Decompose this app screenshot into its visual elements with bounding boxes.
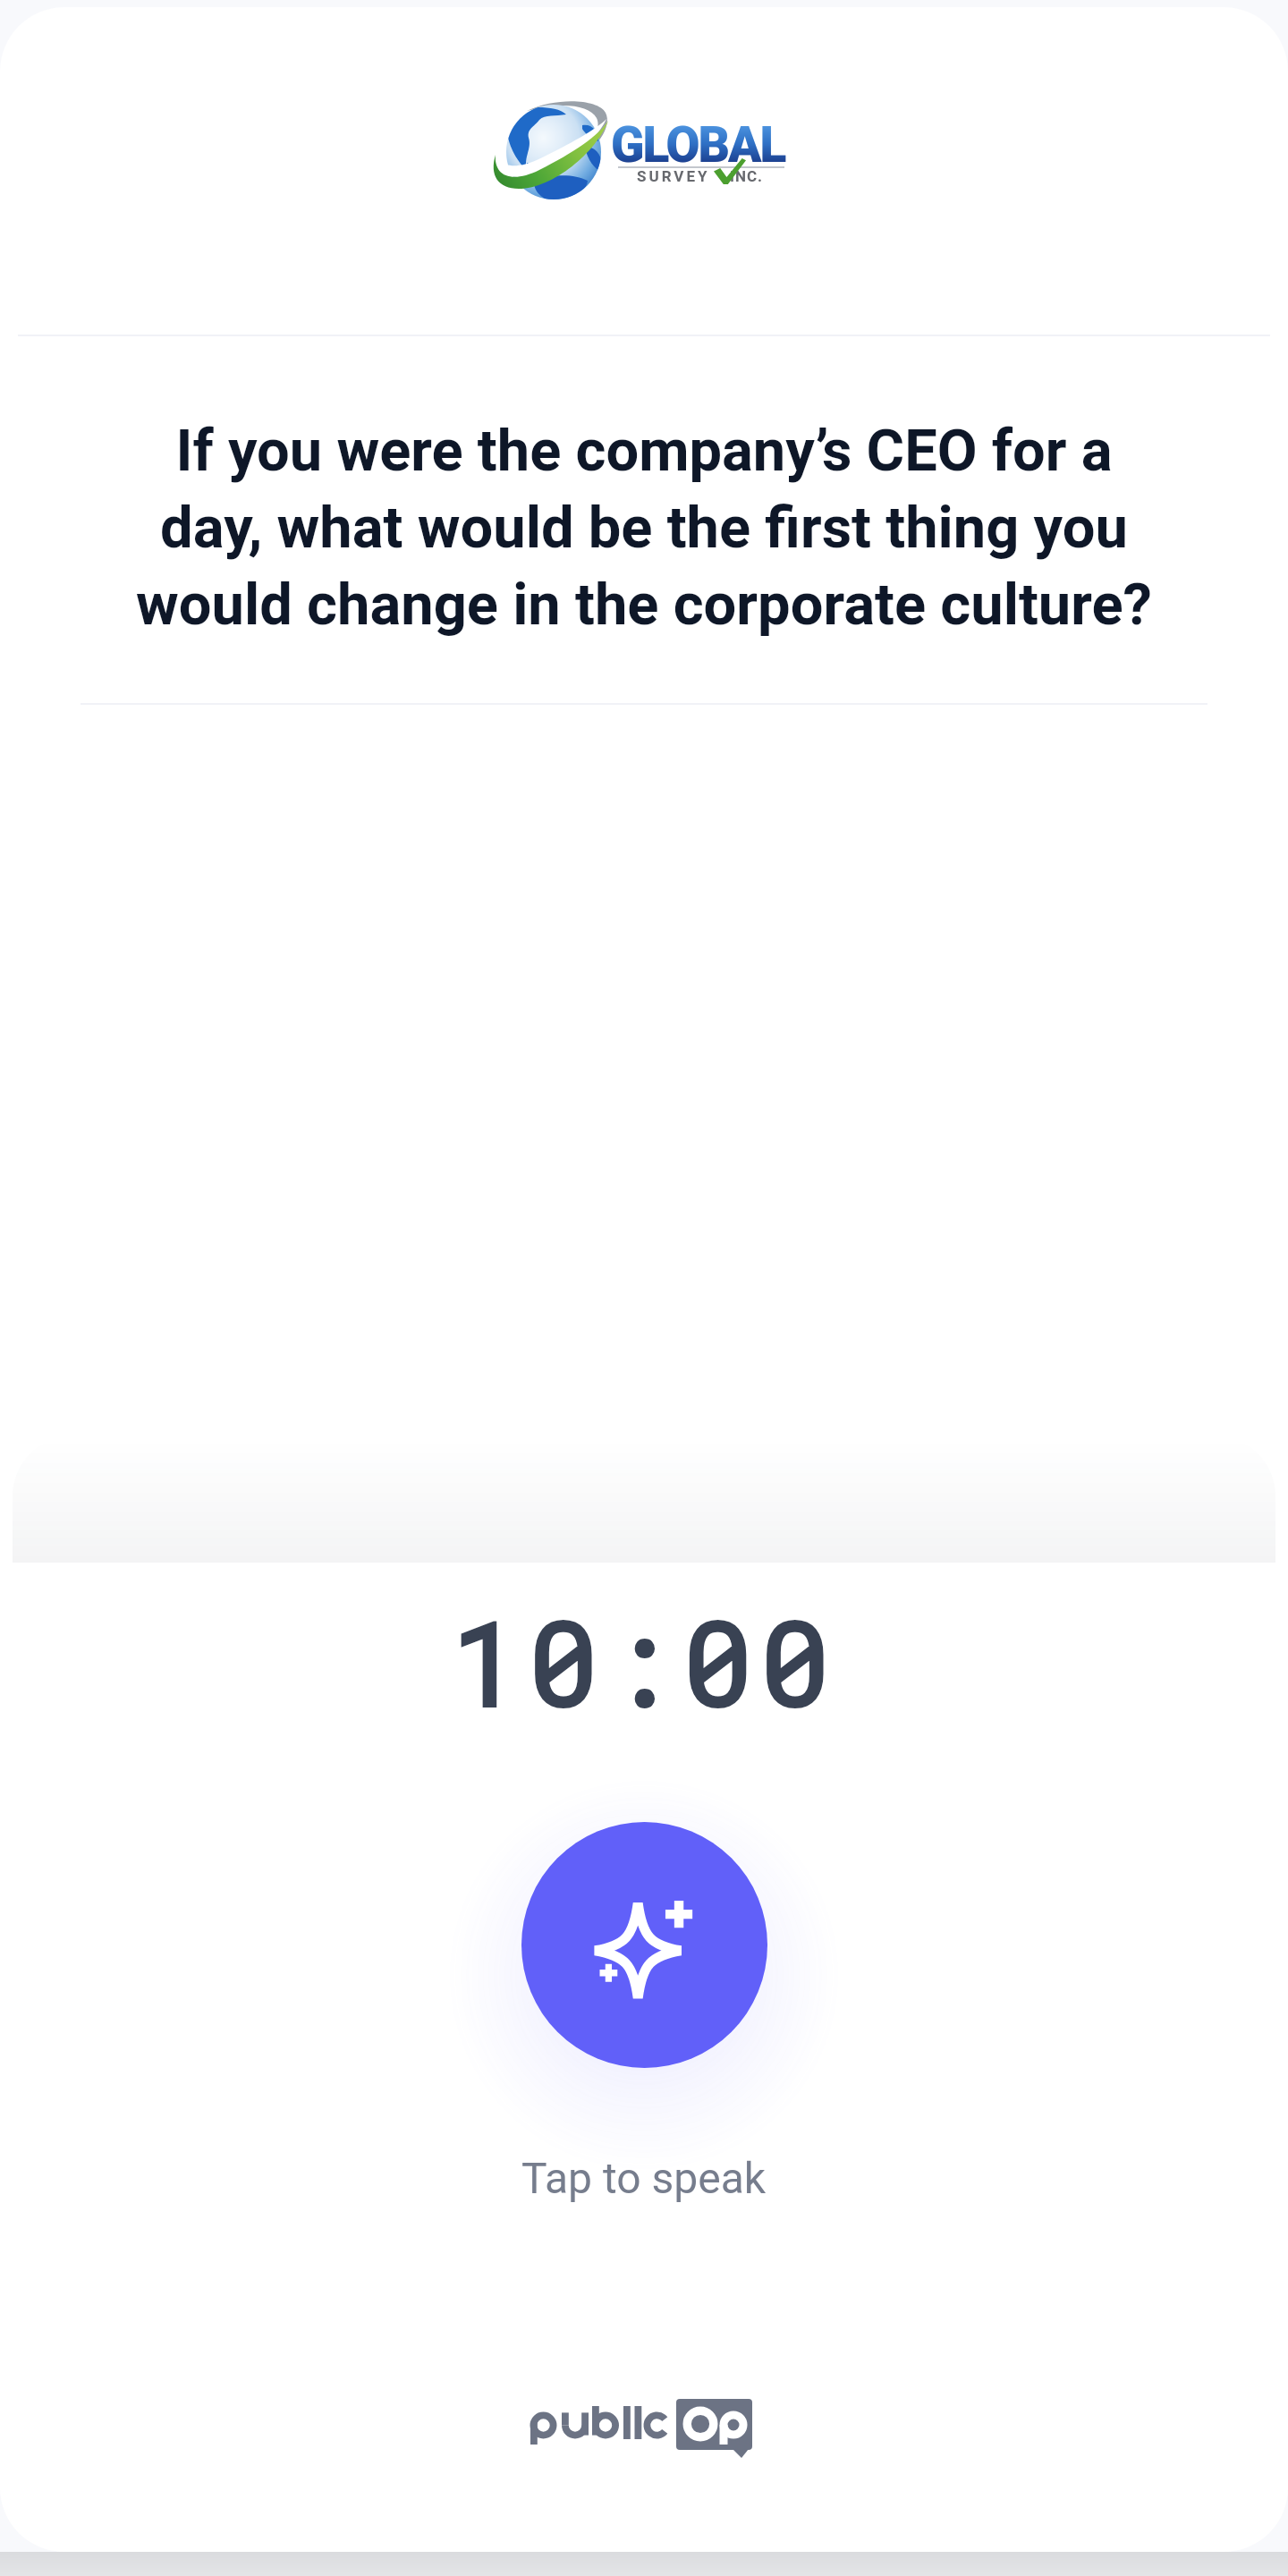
staticText: 10:00 xyxy=(451,1585,838,1737)
staticText: Tap to speak xyxy=(521,2153,767,2203)
staticText: SURVEY xyxy=(637,167,710,185)
staticText: INC. xyxy=(730,167,764,185)
staticText: If you were the company’s CEO for a day,… xyxy=(130,417,1158,639)
staticText: GLOBAL xyxy=(611,116,785,174)
button[interactable]: Tap to speak xyxy=(521,1822,767,2068)
